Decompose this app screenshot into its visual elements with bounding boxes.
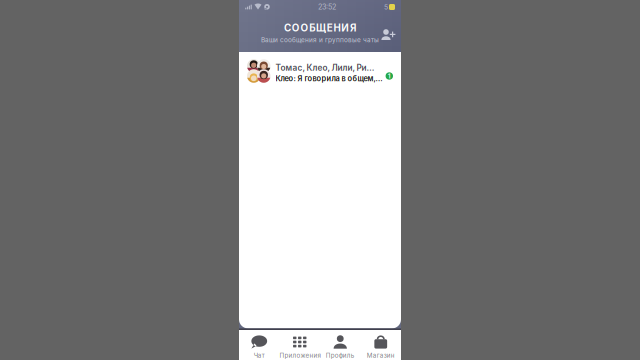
button[interactable]: Чат bbox=[239, 330, 279, 360]
staticText: О bbox=[292, 22, 300, 34]
button[interactable]: Профиль bbox=[320, 330, 360, 360]
staticText: Б bbox=[309, 22, 315, 34]
staticText: Ваши сообщения и групповые чаты bbox=[261, 36, 379, 44]
staticText: Магазин bbox=[367, 352, 395, 359]
staticText: Клео: Я говорила в общем, … bbox=[275, 74, 383, 83]
staticText: О bbox=[300, 22, 308, 34]
staticText: 5 bbox=[384, 3, 388, 11]
button[interactable]: Приложения bbox=[279, 330, 320, 360]
staticText: Н bbox=[333, 22, 340, 34]
staticText: И bbox=[341, 22, 349, 34]
staticText: Профиль bbox=[326, 352, 355, 359]
staticText: Томас, Клео, Лили, Ри… bbox=[275, 63, 374, 73]
button[interactable]: Томас, Клео, Лили, Ри… bbox=[239, 59, 401, 83]
staticText: Щ bbox=[316, 22, 326, 34]
staticText: 1 bbox=[388, 72, 391, 80]
staticText: 23:52 bbox=[318, 3, 336, 11]
staticText: Чат bbox=[254, 352, 265, 359]
button[interactable]: Магазин bbox=[360, 330, 401, 360]
staticText: Е bbox=[327, 22, 333, 34]
staticText: Приложения bbox=[279, 352, 320, 359]
staticText: С bbox=[284, 22, 291, 34]
staticText: Я bbox=[350, 22, 356, 34]
button[interactable]: New message bbox=[377, 27, 395, 42]
